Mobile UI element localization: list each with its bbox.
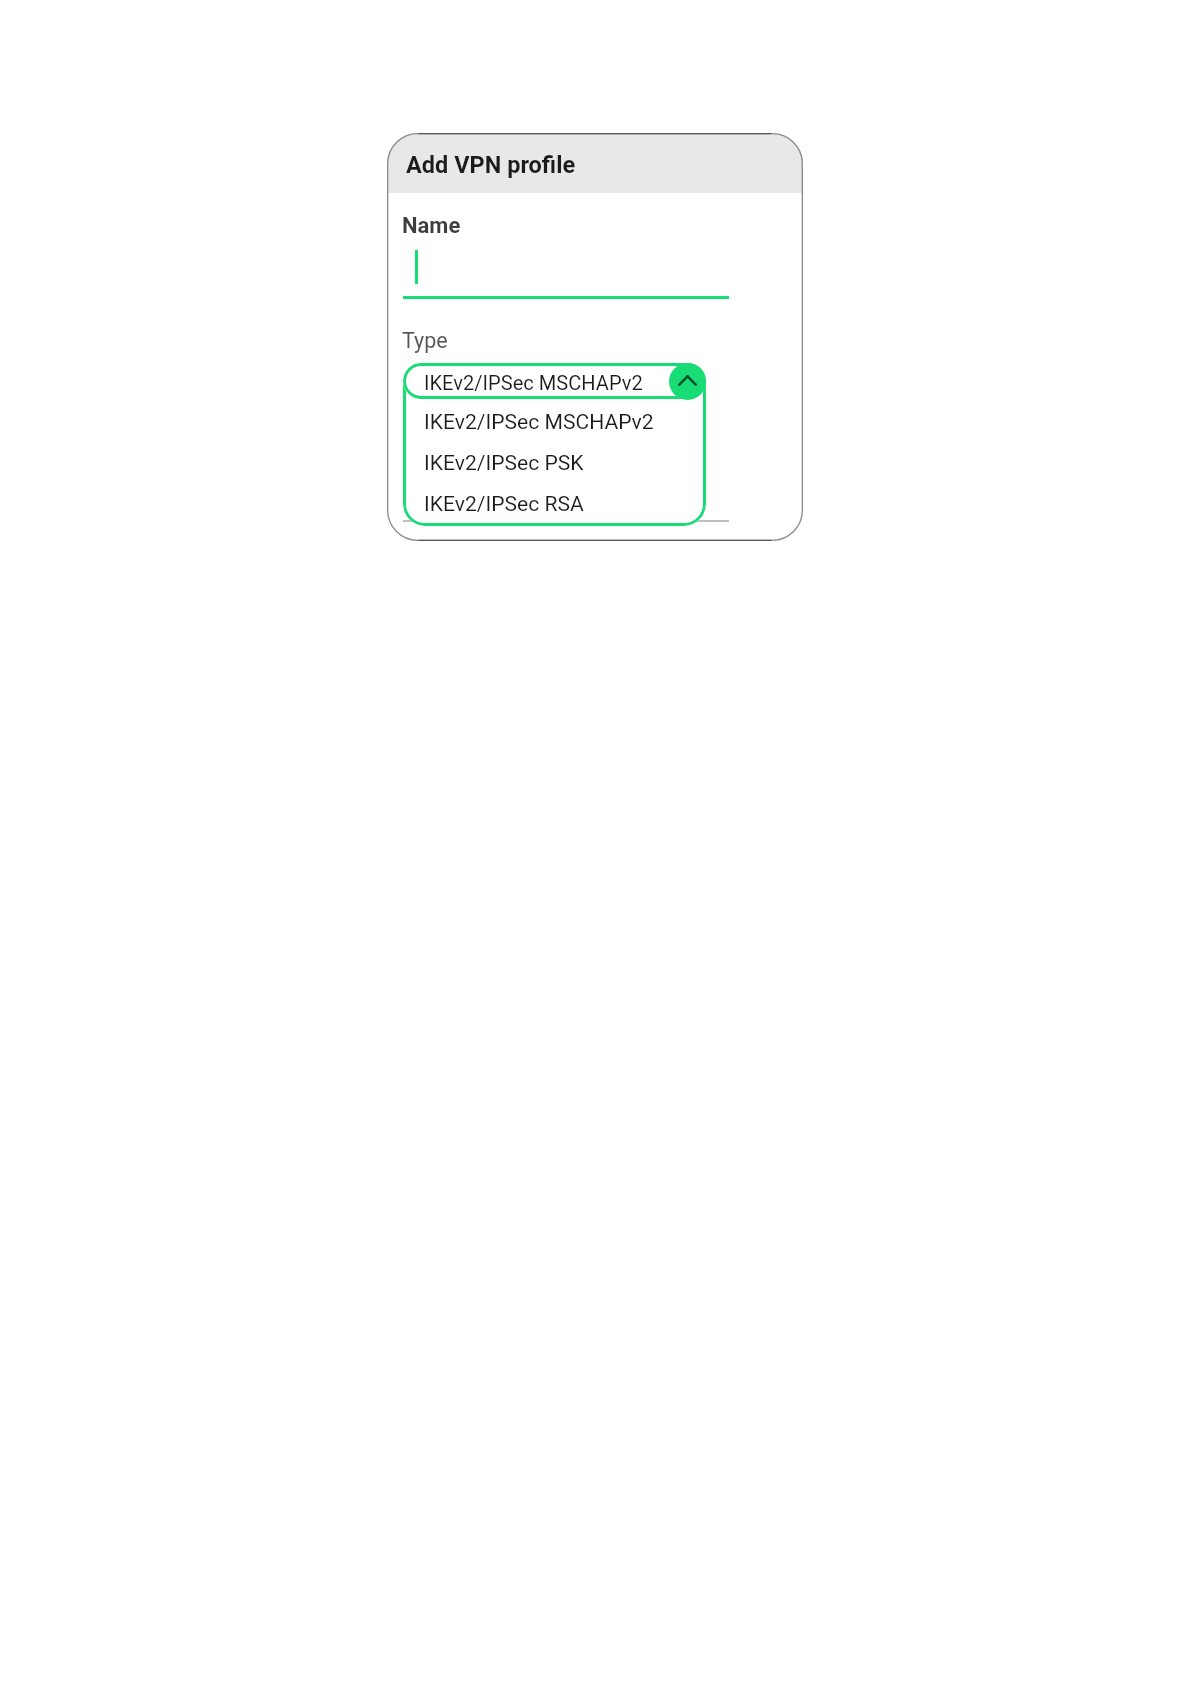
staticText: Type	[402, 328, 448, 353]
button[interactable]: IKEv2/IPSec RSA	[407, 483, 701, 524]
staticText: IKEv2/IPSec MSCHAPv2	[424, 371, 643, 395]
staticText: IKEv2/IPSec PSK	[424, 450, 584, 475]
button[interactable]: IKEv2/IPSec MSCHAPv2	[407, 401, 701, 442]
button[interactable]: Collapse dropdown	[669, 363, 706, 400]
button[interactable]: IKEv2/IPSec MSCHAPv2	[403, 363, 706, 399]
staticText: IKEv2/IPSec MSCHAPv2	[424, 409, 654, 434]
button[interactable]: IKEv2/IPSec PSK	[407, 442, 701, 483]
staticText: IKEv2/IPSec RSA	[424, 491, 584, 516]
staticText: Name	[402, 213, 461, 239]
button[interactable]: Name input field	[403, 243, 729, 299]
staticText: Add VPN profile	[406, 151, 576, 179]
